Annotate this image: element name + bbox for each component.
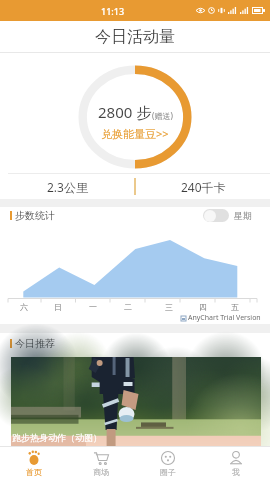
other: Community — [160, 450, 176, 466]
staticText: 今日推荐 — [15, 337, 55, 350]
button[interactable]: Mall — [67, 447, 134, 480]
staticText: 首页 — [26, 467, 42, 477]
staticText: 2800 步 — [98, 102, 152, 122]
staticText: 二 — [124, 302, 132, 312]
staticText: 兑换能量豆>> — [101, 126, 169, 141]
button[interactable]: 跑步热身动作（动图） — [11, 357, 261, 446]
staticText: 跑步热身动作（动图） — [12, 432, 102, 443]
button[interactable]: Community — [134, 447, 202, 480]
staticText: 商场 — [93, 467, 109, 477]
staticText: 11:13 — [101, 5, 125, 17]
button[interactable]: 2.3公里 — [0, 174, 134, 199]
staticText: (赠送) — [152, 110, 173, 121]
staticText: 240千卡 — [181, 179, 226, 195]
staticText: 2.3公里 — [47, 179, 88, 195]
other: Profile — [228, 450, 244, 466]
staticText: 步数统计 — [15, 209, 55, 222]
staticText: 圈子 — [160, 467, 176, 477]
button[interactable]: Profile — [202, 447, 270, 480]
staticText: 三 — [165, 302, 173, 312]
button[interactable]: 240千卡 — [136, 174, 270, 199]
button[interactable] — [203, 209, 229, 222]
staticText: 一 — [89, 302, 97, 312]
button[interactable]: 兑换能量豆>> — [101, 126, 169, 141]
staticText: AnyChart Trial Version — [188, 313, 261, 323]
staticText: 星期 — [234, 210, 252, 221]
other: Mall — [93, 450, 109, 466]
staticText: 六 — [20, 302, 28, 312]
staticText: 五 — [231, 302, 239, 312]
staticText: 我 — [232, 467, 240, 477]
button[interactable]: 今日活动量 — [0, 21, 270, 52]
button[interactable]: 首页 — [0, 447, 67, 480]
staticText: 四 — [199, 302, 207, 312]
staticText: 日 — [54, 302, 62, 312]
staticText: 今日活动量 — [95, 27, 175, 47]
